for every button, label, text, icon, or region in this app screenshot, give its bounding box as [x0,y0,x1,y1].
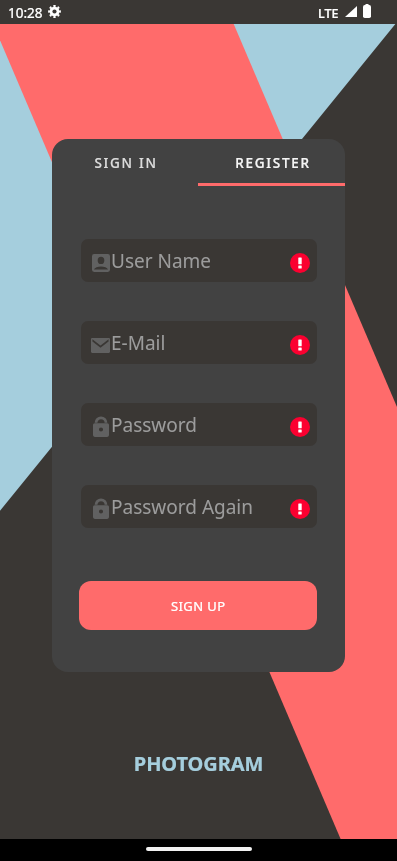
staticText: LTE [318,5,339,22]
staticText: Password [111,412,197,438]
staticText: 10:28 [8,4,43,22]
button[interactable]: User Name [81,239,317,282]
staticText: REGISTER [235,154,311,172]
button[interactable]: SIGN UP [79,581,317,630]
staticText: PHOTOGRAM [0,750,397,777]
button[interactable]: E-Mail [81,321,317,364]
staticText: User Name [111,248,212,274]
button[interactable]: Password Again [81,485,317,528]
staticText: SIGN IN [94,154,158,172]
button[interactable]: REGISTER [198,139,345,186]
staticText: Password Again [111,494,254,520]
staticText: E-Mail [111,330,166,356]
staticText: SIGN UP [171,597,226,615]
button[interactable]: Password [81,403,317,446]
button[interactable]: SIGN IN [52,139,198,186]
